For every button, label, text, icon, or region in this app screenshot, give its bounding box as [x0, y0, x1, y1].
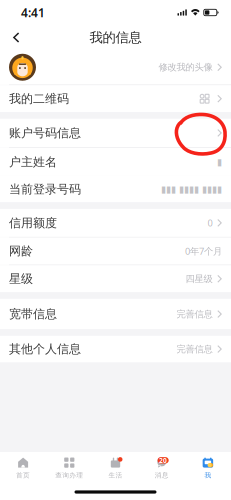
staticText: 四星级	[185, 273, 212, 285]
button[interactable]: Back	[0, 25, 29, 50]
staticText: 账户号码信息	[9, 126, 81, 140]
button[interactable]: 20	[139, 452, 185, 484]
staticText: 20	[159, 456, 167, 465]
staticText: 完善信息	[176, 343, 212, 355]
staticText: 户主姓名	[9, 154, 57, 169]
staticText: 其他个人信息	[9, 342, 81, 356]
staticText: 修改我的头像	[158, 61, 212, 73]
button[interactable]: 我的二维码	[0, 85, 231, 112]
button[interactable]: 首页	[0, 452, 46, 484]
staticText: 4:41	[21, 4, 45, 20]
staticText: 首页	[16, 471, 30, 479]
staticText: ▮▮▮ ▮▮▮▮ ▮▮▮▮	[161, 184, 222, 194]
button[interactable]: 星级	[0, 265, 231, 292]
button[interactable]: 我	[185, 452, 231, 484]
staticText: 消息	[155, 471, 169, 479]
staticText: 0	[207, 217, 212, 229]
staticText: 我的二维码	[9, 91, 69, 106]
button[interactable]: 当前登录号码	[0, 176, 231, 202]
button[interactable]: 查询办理	[46, 452, 92, 484]
button[interactable]: 网龄	[0, 238, 231, 265]
button[interactable]: 宽带信息	[0, 299, 231, 329]
button[interactable]: 信用额度	[0, 209, 231, 237]
staticText: 星级	[9, 271, 33, 286]
staticText: 0年7个月	[185, 245, 222, 257]
button[interactable]: 生活	[92, 452, 139, 484]
staticText: 我的信息	[89, 29, 141, 46]
staticText: 生活	[108, 471, 122, 479]
staticText: ▮	[217, 157, 222, 167]
staticText: 查询办理	[55, 471, 83, 479]
button[interactable]: 修改我的头像	[0, 50, 231, 84]
staticText: 当前登录号码	[9, 182, 81, 196]
button[interactable]: 其他个人信息	[0, 336, 231, 362]
button[interactable]: 户主姓名	[0, 148, 231, 176]
staticText: 信用额度	[9, 215, 57, 230]
staticText: 我	[204, 471, 211, 479]
staticText: 网龄	[9, 244, 33, 258]
button[interactable]: 账户号码信息	[0, 119, 231, 147]
staticText: 完善信息	[176, 308, 212, 320]
staticText: 宽带信息	[9, 307, 57, 321]
